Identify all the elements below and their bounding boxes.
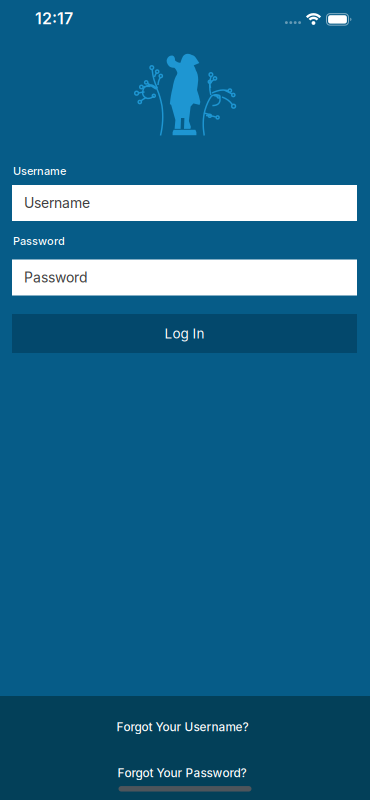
button[interactable]: Username <box>12 185 357 221</box>
staticText: Password <box>24 269 88 286</box>
button[interactable]: Forgot Your Username? <box>116 720 248 734</box>
button[interactable]: Password <box>12 259 357 295</box>
staticText: Username <box>24 195 90 211</box>
button[interactable]: Forgot Your Password? <box>117 766 246 780</box>
staticText: Password <box>13 234 65 247</box>
button[interactable]: Log In <box>12 314 357 353</box>
staticText: Log In <box>164 325 204 341</box>
staticText: Forgot Your Password? <box>117 766 246 780</box>
staticText: Username <box>13 164 66 177</box>
staticText: 12:17 <box>35 9 73 28</box>
staticText: Forgot Your Username? <box>116 720 248 734</box>
